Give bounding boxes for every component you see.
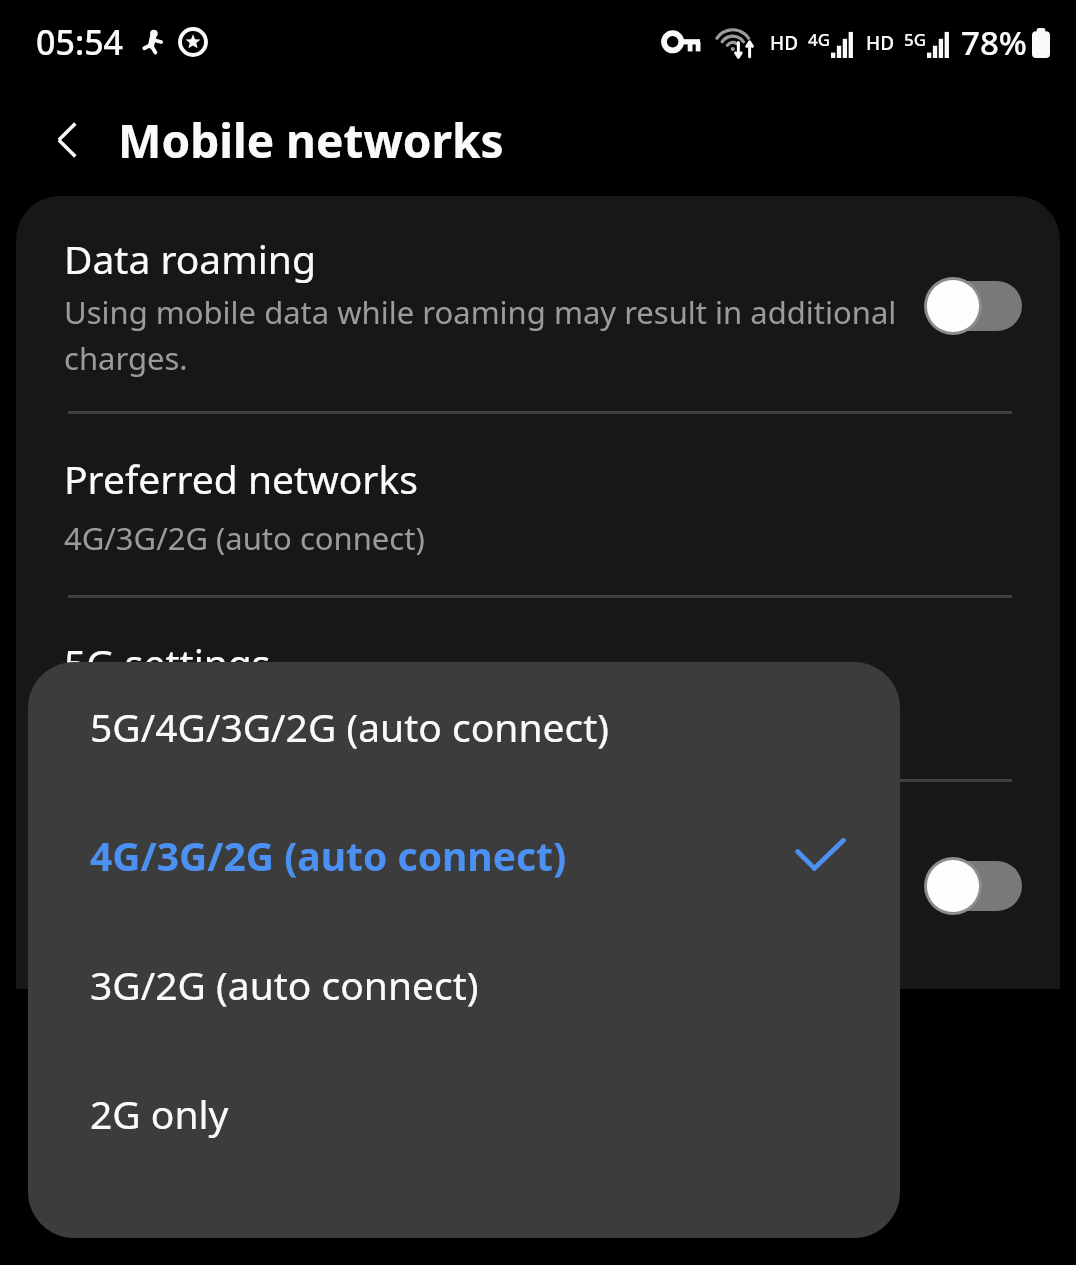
button[interactable]: 5G/4G/3G/2G (auto connect) [28, 662, 900, 791]
staticText: 5G/4G/3G/2G (auto connect) [90, 700, 848, 753]
staticText: HD [866, 30, 895, 56]
staticText: Data roaming [64, 232, 316, 285]
staticText: 3G/2G (auto connect) [90, 958, 848, 1011]
button[interactable]: 4G/3G/2G (auto connect) [28, 791, 900, 920]
staticText: Mobile networks [118, 109, 504, 172]
other: Selected [792, 828, 848, 884]
button[interactable]: Toggle off [924, 857, 1024, 915]
button[interactable]: 5G settings [16, 598, 1060, 779]
staticText: 5G settings [64, 636, 271, 689]
staticText: Adaptive 5G [64, 812, 286, 865]
staticText: 78% [961, 20, 1027, 65]
staticText: Switch between 5G and LTE to reduce batt… [64, 871, 904, 959]
staticText: 05:54 [36, 19, 124, 65]
staticText: HD [770, 30, 799, 56]
button[interactable]: 2G only [28, 1049, 900, 1178]
button[interactable]: Toggle off [924, 277, 1024, 335]
staticText: 4G/3G/2G (auto connect) [90, 829, 792, 882]
button[interactable]: 3G/2G (auto connect) [28, 920, 900, 1049]
staticText: 2G only [90, 1087, 848, 1140]
button[interactable]: Adaptive 5G [16, 782, 1060, 989]
staticText: Manage 5G network options [64, 701, 478, 743]
button[interactable]: Data roaming [16, 196, 1060, 411]
staticText: 4G/3G/2G (auto connect) [64, 517, 425, 559]
button[interactable]: Back [36, 108, 100, 172]
staticText: 4G [808, 28, 831, 51]
staticText: 5G [904, 28, 927, 51]
staticText: Preferred networks [64, 452, 418, 505]
staticText: Using mobile data while roaming may resu… [64, 291, 904, 379]
button[interactable]: Preferred networks [16, 414, 1060, 595]
